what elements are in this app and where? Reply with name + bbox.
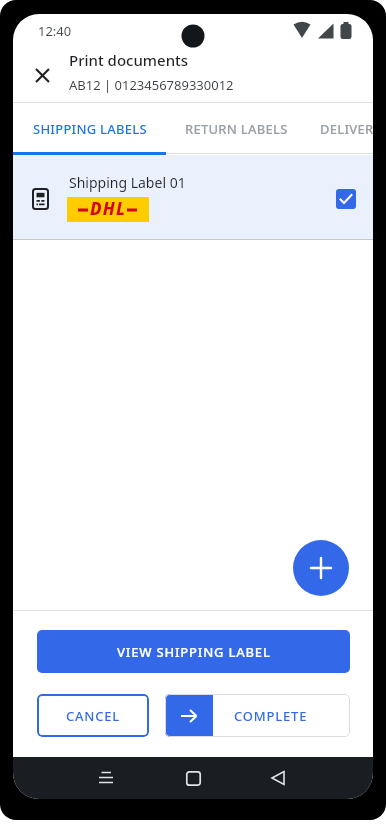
staticText: Print documents [69,50,189,70]
staticText: DHL [90,197,127,220]
button[interactable]: Shipping Label 01 [13,155,373,240]
staticText: Shipping Label 01 [69,173,186,192]
button[interactable] [293,540,349,596]
button[interactable] [174,757,212,799]
button[interactable]: DELIVERY NOT [306,103,373,155]
button[interactable]: COMPLETE [165,694,350,737]
button[interactable]: VIEW SHIPPING LABEL [37,630,350,673]
staticText: CANCEL [66,707,121,725]
staticText: RETURN LABELS [185,120,288,138]
button[interactable]: SHIPPING LABELS [13,103,166,155]
button[interactable]: CANCEL [37,694,149,737]
button[interactable] [336,189,356,209]
staticText: DELIVERY NOT [320,120,373,138]
staticText: SHIPPING LABELS [33,120,147,138]
staticText: VIEW SHIPPING LABEL [117,643,271,661]
staticText: COMPLETE [234,707,308,725]
button[interactable]: RETURN LABELS [166,103,306,155]
button[interactable] [259,757,297,799]
staticText: AB12 | 0123456789330012 [69,76,234,94]
button[interactable] [24,57,60,93]
button[interactable] [87,757,125,799]
staticText: 12:40 [38,22,72,40]
